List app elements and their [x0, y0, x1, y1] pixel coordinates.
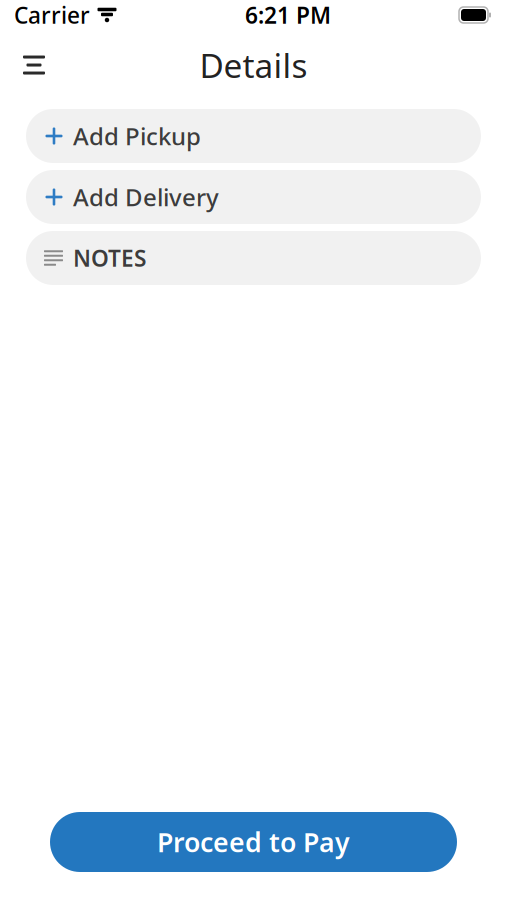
staticText: Proceed to Pay	[157, 824, 350, 860]
button[interactable]: Menu	[10, 41, 58, 89]
button[interactable]: Add Pickup	[26, 109, 481, 163]
staticText: Carrier	[14, 0, 90, 30]
staticText: NOTES	[73, 243, 146, 273]
button[interactable]: Proceed to Pay	[50, 812, 457, 872]
button[interactable]: Add Delivery	[26, 170, 481, 224]
staticText: Details	[199, 43, 307, 87]
staticText: 6:21 PM	[245, 0, 331, 30]
staticText: Add Pickup	[73, 120, 201, 152]
staticText: Add Delivery	[73, 181, 219, 213]
button[interactable]: NOTES	[26, 231, 481, 285]
